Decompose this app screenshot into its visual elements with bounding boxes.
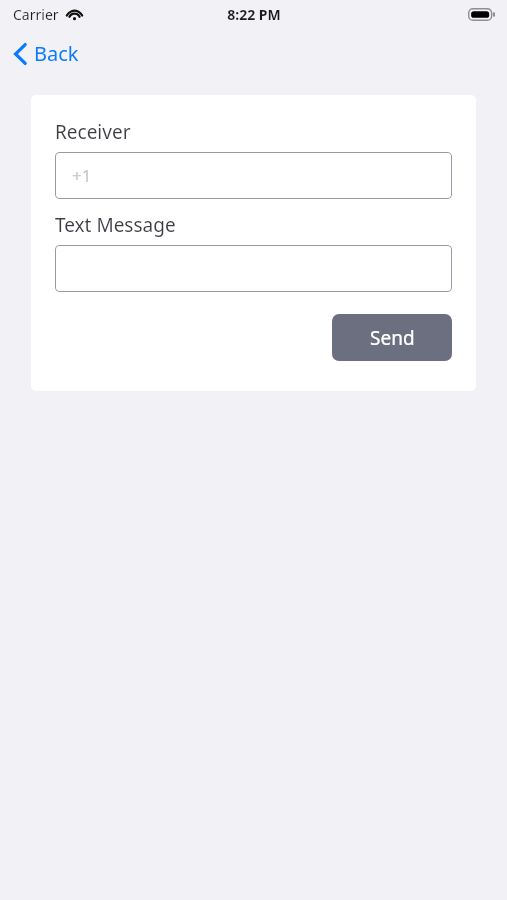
other: Wi-Fi signal	[66, 8, 83, 21]
staticText: Carrier	[13, 5, 59, 24]
button[interactable]: Send	[332, 314, 452, 361]
staticText: Text Message	[55, 212, 176, 238]
staticText: +1	[72, 164, 92, 187]
button[interactable]: Receiver phone number	[55, 152, 452, 199]
button[interactable]: Text message body	[55, 245, 452, 292]
other: Back	[14, 43, 27, 65]
button[interactable]: Back	[8, 35, 89, 72]
staticText: Receiver	[55, 119, 131, 145]
staticText: Back	[34, 40, 79, 67]
staticText: Send	[370, 325, 415, 351]
other: Battery full	[468, 8, 495, 21]
staticText: 8:22 PM	[227, 5, 281, 24]
